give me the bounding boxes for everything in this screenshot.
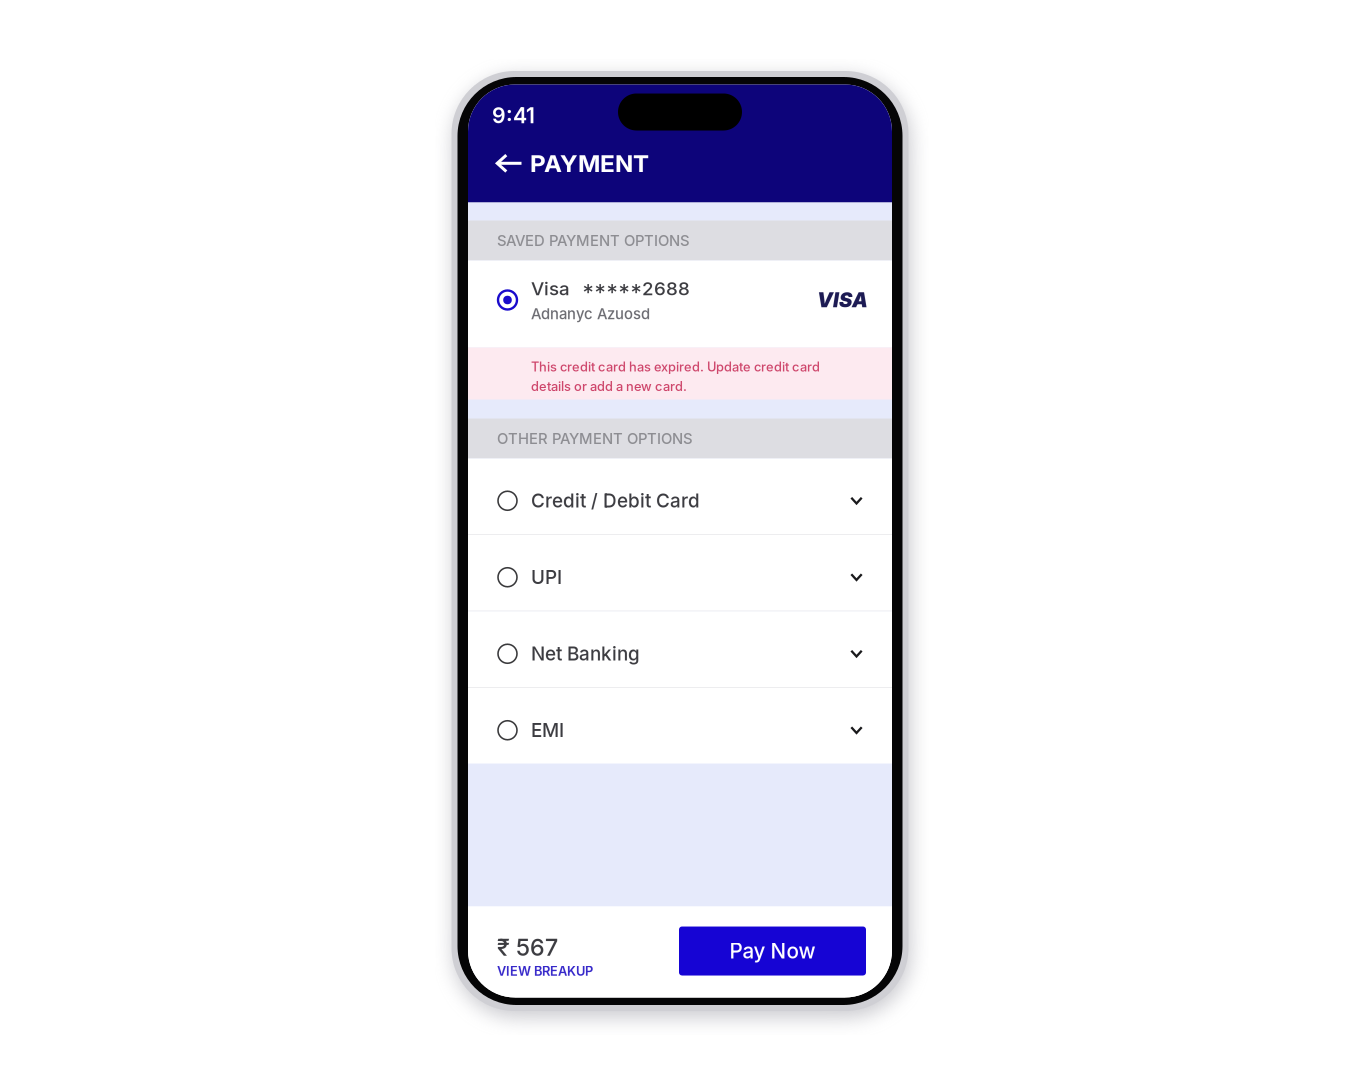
staticText: Visa bbox=[531, 277, 570, 300]
staticText: VISA bbox=[817, 288, 868, 312]
staticText: This credit card has expired. Update cre… bbox=[531, 359, 820, 374]
staticText: 9:41 bbox=[492, 103, 535, 128]
staticText: PAYMENT bbox=[530, 149, 649, 178]
button[interactable]: Back bbox=[494, 148, 525, 178]
button[interactable]: EMI bbox=[468, 688, 892, 763]
staticText: SAVED PAYMENT OPTIONS bbox=[497, 231, 690, 249]
button[interactable]: Net Banking bbox=[468, 611, 892, 687]
staticText: OTHER PAYMENT OPTIONS bbox=[497, 429, 693, 447]
staticText: Net Banking bbox=[531, 642, 640, 665]
staticText: *****2688 bbox=[582, 277, 690, 300]
button[interactable]: UPI bbox=[468, 535, 892, 610]
button[interactable]: VIEW BREAKUP bbox=[497, 963, 593, 979]
staticText: Pay Now bbox=[729, 938, 815, 963]
button[interactable]: Pay Now bbox=[679, 926, 866, 985]
staticText: EMI bbox=[531, 719, 564, 742]
staticText: ₹ 567 bbox=[497, 933, 558, 961]
staticText: Credit / Debit Card bbox=[531, 489, 700, 512]
staticText: Adnanyc Azuosd bbox=[531, 305, 650, 323]
button[interactable]: Visa bbox=[468, 260, 892, 347]
button[interactable]: Credit / Debit Card bbox=[468, 458, 892, 534]
staticText: VIEW BREAKUP bbox=[497, 963, 593, 979]
staticText: UPI bbox=[531, 566, 562, 589]
staticText: details or add a new card. bbox=[531, 378, 687, 394]
